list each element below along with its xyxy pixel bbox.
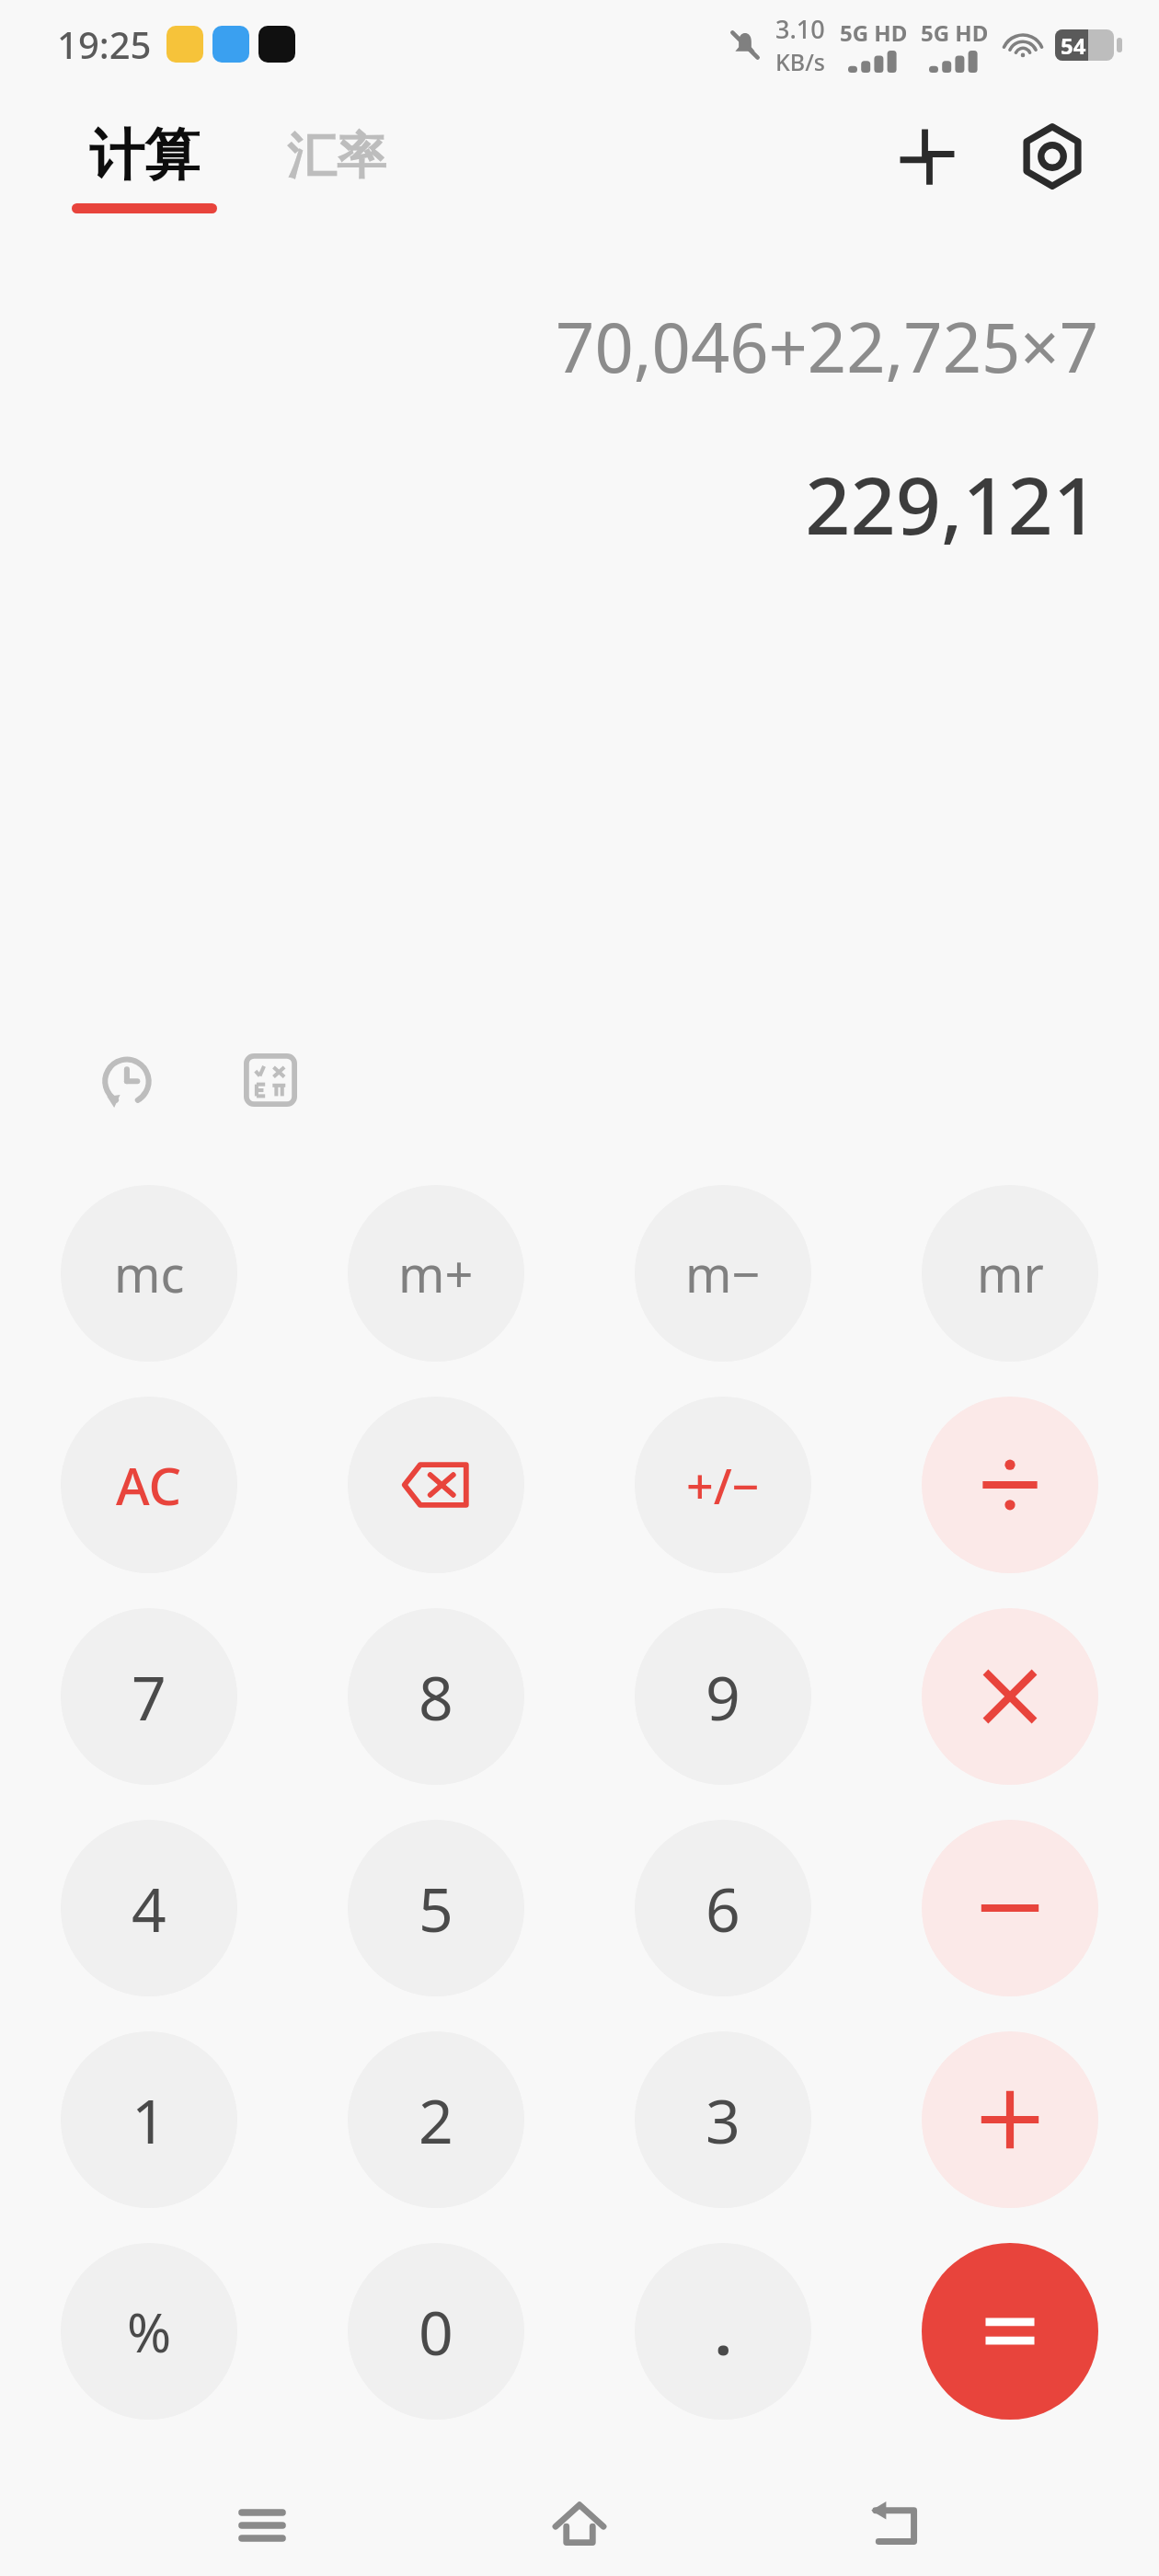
button[interactable]: 0 — [348, 2243, 524, 2420]
staticText: % — [127, 2295, 172, 2368]
button[interactable]: Back — [842, 2475, 952, 2576]
staticText: mr — [977, 1239, 1044, 1307]
staticText: KB/s — [775, 46, 825, 77]
staticText: 229,121 — [805, 450, 1098, 558]
button[interactable]: mc — [61, 1185, 237, 1362]
button[interactable]: Plus — [922, 2031, 1098, 2208]
staticText: 计算 — [89, 121, 200, 190]
button[interactable]: Home — [524, 2475, 635, 2576]
button[interactable]: 4 — [61, 1820, 237, 1996]
button[interactable]: Floating window — [881, 110, 973, 202]
button[interactable]: History — [81, 1036, 169, 1124]
button[interactable]: 2 — [348, 2031, 524, 2208]
button[interactable]: Divide — [922, 1397, 1098, 1573]
button[interactable]: m+ — [348, 1185, 524, 1362]
button[interactable]: Minus — [922, 1820, 1098, 1996]
staticText: 4 — [132, 1867, 166, 1949]
staticText: 1 — [132, 2078, 166, 2161]
staticText: 5G HD — [921, 17, 989, 48]
staticText: 5G HD — [840, 17, 908, 48]
button[interactable]: 6 — [635, 1820, 811, 1996]
button[interactable]: . — [635, 2243, 811, 2420]
staticText: 3.10 — [775, 12, 825, 46]
staticText: +/− — [686, 1453, 760, 1518]
button[interactable]: 8 — [348, 1608, 524, 1785]
staticText: AC — [116, 1450, 182, 1520]
staticText: 0 — [419, 2290, 453, 2373]
button[interactable]: Settings — [1006, 110, 1098, 202]
staticText: 8 — [419, 1655, 453, 1738]
button[interactable]: 1 — [61, 2031, 237, 2208]
button[interactable]: Backspace — [348, 1397, 524, 1573]
staticText: 70,046+22,725×7 — [556, 300, 1098, 393]
staticText: 9 — [706, 1655, 740, 1738]
button[interactable]: 计算 — [72, 121, 217, 213]
button[interactable]: m− — [635, 1185, 811, 1362]
staticText: 5 — [419, 1867, 453, 1949]
button[interactable]: Equals — [922, 2243, 1098, 2420]
staticText: m− — [685, 1239, 761, 1307]
button[interactable]: AC — [61, 1397, 237, 1573]
button[interactable]: 5 — [348, 1820, 524, 1996]
button[interactable]: 3 — [635, 2031, 811, 2208]
button[interactable]: 9 — [635, 1608, 811, 1785]
staticText: 2 — [419, 2078, 453, 2161]
button[interactable]: +/− — [635, 1397, 811, 1573]
staticText: 3 — [706, 2078, 740, 2161]
button[interactable]: Multiply — [922, 1608, 1098, 1785]
button[interactable]: Scientific — [226, 1036, 315, 1124]
staticText: 汇率 — [287, 125, 386, 188]
button[interactable]: 汇率 — [287, 125, 386, 210]
staticText: 7 — [132, 1655, 166, 1738]
button[interactable]: 7 — [61, 1608, 237, 1785]
staticText: . — [715, 2290, 732, 2373]
button[interactable]: % — [61, 2243, 237, 2420]
button[interactable]: Recents — [207, 2475, 317, 2576]
button[interactable]: mr — [922, 1185, 1098, 1362]
staticText: mc — [114, 1239, 185, 1307]
staticText: 54 — [1061, 30, 1086, 61]
staticText: 6 — [706, 1867, 740, 1949]
staticText: m+ — [398, 1239, 474, 1307]
staticText: 19:25 — [57, 19, 152, 69]
